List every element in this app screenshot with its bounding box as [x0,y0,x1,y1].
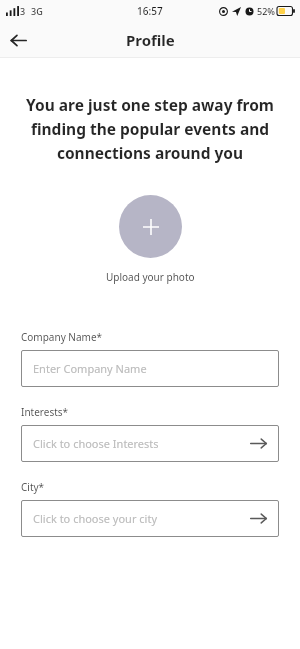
button[interactable]: Click to choose your city [21,500,279,537]
staticText: You are just one step away from finding … [22,94,278,163]
staticText: Company Name* [21,330,103,344]
staticText: Profile [126,30,175,50]
staticText: 3G [31,5,43,17]
staticText: Upload your photo [106,270,195,284]
button[interactable]: Upload your photo [119,195,182,258]
button[interactable]: Click to choose Interests [21,425,279,462]
staticText: 16:57 [137,4,163,18]
staticText: City* [21,480,45,494]
button[interactable]: Back [0,22,36,58]
staticText: Click to choose Interests [33,436,250,451]
button[interactable]: Enter Company Name [21,350,279,387]
staticText: 3 [20,5,26,17]
staticText: Click to choose your city [33,511,250,526]
staticText: Enter Company Name [33,361,267,376]
staticText: Interests* [21,405,69,419]
staticText: 52% [257,5,275,17]
